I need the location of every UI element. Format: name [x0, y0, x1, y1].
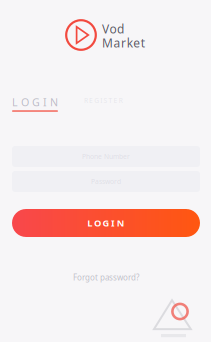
staticText: t: [141, 35, 145, 51]
staticText: G: [32, 95, 40, 109]
staticText: V: [102, 21, 109, 37]
staticText: E: [89, 96, 93, 105]
staticText: R: [119, 96, 123, 105]
staticText: N: [50, 95, 58, 109]
button[interactable]: Forgot password?: [66, 272, 146, 283]
button[interactable]: L: [12, 209, 200, 237]
staticText: N: [117, 217, 125, 229]
staticText: a: [113, 35, 120, 51]
staticText: S: [103, 96, 107, 105]
button[interactable]: L: [12, 95, 58, 112]
staticText: G: [94, 96, 99, 105]
staticText: r: [121, 35, 126, 51]
staticText: o: [109, 21, 116, 37]
staticText: e: [133, 35, 140, 51]
staticText: L: [12, 95, 18, 109]
staticText: R: [84, 96, 88, 105]
staticText: Forgot password?: [73, 272, 139, 283]
button[interactable]: R: [84, 96, 123, 105]
staticText: M: [102, 35, 113, 51]
staticText: Phone Number: [82, 152, 130, 161]
staticText: T: [108, 96, 112, 105]
staticText: k: [127, 35, 133, 51]
staticText: Password: [91, 177, 121, 186]
staticText: L: [87, 217, 92, 229]
staticText: E: [114, 96, 118, 105]
staticText: I: [43, 95, 47, 109]
staticText: O: [94, 217, 101, 229]
staticText: d: [117, 21, 124, 37]
staticText: I: [111, 217, 115, 229]
staticText: I: [100, 96, 102, 105]
staticText: G: [102, 217, 109, 229]
staticText: O: [21, 95, 29, 109]
